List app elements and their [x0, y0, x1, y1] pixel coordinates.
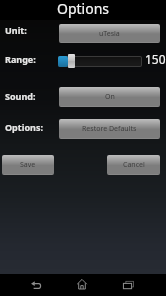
button[interactable]: Recents [118, 274, 138, 296]
staticText: Save [20, 160, 36, 170]
button[interactable]: uTesla [59, 24, 160, 43]
staticText: Options [57, 0, 110, 18]
staticText: Range: [5, 53, 36, 65]
button[interactable]: Home [72, 274, 92, 296]
button[interactable]: Save [2, 155, 54, 175]
button[interactable]: Restore Defaults [59, 119, 160, 139]
button[interactable]: Back [26, 274, 46, 296]
staticText: Sound: [5, 90, 36, 102]
staticText: Cancel [123, 160, 145, 170]
staticText: Options: [5, 121, 43, 133]
staticText: uTesla [99, 29, 120, 39]
staticText: On [105, 92, 115, 102]
staticText: Restore Defaults [82, 124, 137, 134]
button[interactable]: Cancel [107, 155, 160, 175]
staticText: 150 [145, 51, 166, 67]
button[interactable]: On [59, 87, 160, 107]
button[interactable]: Range slider [68, 54, 75, 68]
staticText: Unit: [5, 24, 27, 36]
